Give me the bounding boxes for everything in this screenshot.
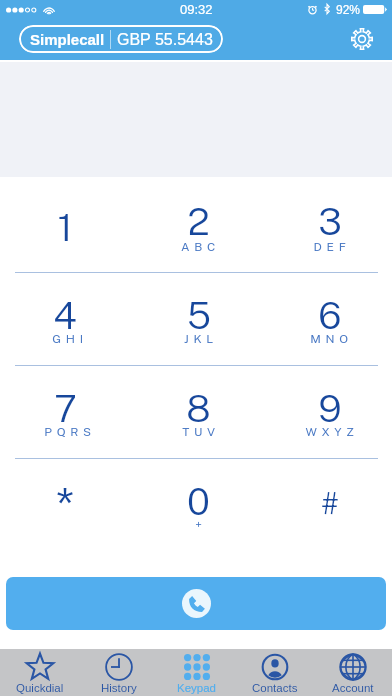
button[interactable]: 0 (133, 459, 264, 551)
button[interactable]: Settings (347, 24, 377, 54)
staticText: 6 (318, 293, 342, 338)
staticText: 3 (318, 199, 342, 244)
staticText: Simplecall (30, 31, 105, 48)
button[interactable]: 5 (133, 273, 264, 366)
staticText: GBP 55.5443 (117, 31, 213, 49)
staticText: Quickdial (16, 682, 64, 695)
staticText: 1 (57, 205, 73, 250)
button[interactable]: History (79, 649, 158, 696)
staticText: ABC (181, 240, 220, 254)
staticText: * (56, 476, 74, 532)
staticText: MNO (310, 332, 353, 346)
staticText: Keypad (177, 682, 217, 695)
button[interactable]: 1 (3, 177, 133, 273)
button[interactable]: 4 (3, 273, 133, 366)
staticText: Contacts (252, 682, 298, 695)
button[interactable]: Keypad (158, 649, 236, 696)
button[interactable]: Call (6, 577, 386, 630)
staticText: DEF (313, 240, 351, 254)
button[interactable]: 3 (264, 177, 392, 273)
button[interactable]: 6 (264, 273, 392, 366)
staticText: 9 (318, 386, 342, 431)
staticText: PQRS (44, 425, 96, 439)
staticText: 8 (186, 386, 211, 431)
staticText: TUV (182, 425, 220, 439)
staticText: 5 (187, 293, 211, 338)
button[interactable]: # (264, 459, 392, 551)
staticText: 09:32 (180, 2, 213, 17)
button[interactable]: * (3, 459, 133, 551)
staticText: WXYZ (305, 425, 359, 439)
staticText: Account (332, 682, 374, 695)
button[interactable]: Quickdial (0, 649, 79, 696)
button[interactable]: 7 (3, 366, 133, 459)
staticText: JKL (184, 332, 218, 346)
button[interactable]: Account (314, 649, 392, 696)
staticText: 2 (187, 199, 210, 244)
staticText: 92% (336, 3, 361, 16)
button[interactable]: 8 (133, 366, 264, 459)
button[interactable]: 9 (264, 366, 392, 459)
button[interactable]: 2 (133, 177, 264, 273)
staticText: + (195, 518, 207, 532)
staticText: GHI (52, 332, 88, 346)
staticText: 4 (53, 293, 77, 338)
staticText: 0 (187, 479, 210, 524)
staticText: History (101, 682, 137, 695)
button[interactable]: Simplecall (19, 25, 223, 53)
button[interactable]: Contacts (236, 649, 314, 696)
staticText: 7 (54, 386, 77, 431)
staticText: # (321, 485, 339, 520)
